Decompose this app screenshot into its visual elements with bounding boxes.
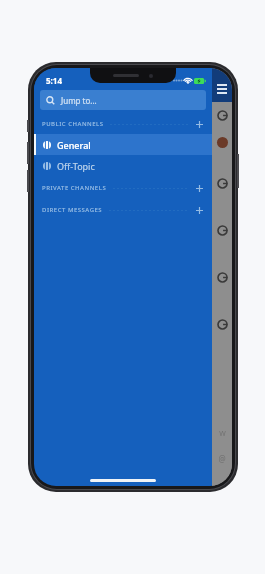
button[interactable]: Menu — [212, 68, 232, 102]
staticText: General — [57, 139, 91, 151]
button[interactable]: Off-Topic — [34, 155, 212, 176]
button[interactable]: DIRECT MESSAGES — [34, 200, 212, 220]
button[interactable]: PRIVATE CHANNELS — [34, 178, 212, 198]
staticText: PUBLIC CHANNELS — [42, 120, 104, 128]
staticText: Off-Topic — [57, 160, 95, 172]
button[interactable]: PUBLIC CHANNELS — [34, 114, 212, 134]
button[interactable]: General — [34, 134, 212, 155]
staticText: Jump to... — [61, 95, 97, 106]
staticText: PRIVATE CHANNELS — [42, 184, 107, 192]
staticText: DIRECT MESSAGES — [42, 206, 103, 214]
staticText: @ — [218, 453, 226, 464]
button[interactable]: Add DIRECT MESSAGES — [195, 206, 204, 215]
staticText: 5:14 — [46, 75, 62, 86]
button[interactable]: Add PUBLIC CHANNELS — [195, 120, 204, 129]
staticText: W — [219, 429, 226, 439]
button[interactable]: Jump to... — [40, 90, 206, 110]
button[interactable]: Add PRIVATE CHANNELS — [195, 184, 204, 193]
